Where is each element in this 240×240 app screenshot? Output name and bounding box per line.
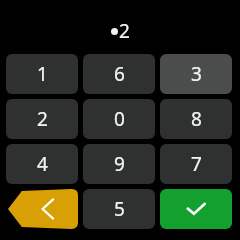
button[interactable]: 7 xyxy=(160,144,232,184)
button[interactable]: 0 xyxy=(83,99,155,139)
staticText: 2 xyxy=(37,106,48,132)
staticText: 8 xyxy=(191,106,202,132)
button[interactable]: 2 xyxy=(6,99,78,139)
staticText: 6 xyxy=(114,61,125,87)
staticText: 3 xyxy=(191,61,202,87)
button[interactable]: Confirm xyxy=(160,189,232,229)
button[interactable]: 6 xyxy=(83,54,155,94)
staticText: 4 xyxy=(37,151,48,177)
button[interactable]: 1 xyxy=(6,54,78,94)
staticText: 9 xyxy=(114,151,125,177)
button[interactable]: 8 xyxy=(160,99,232,139)
staticText: 2 xyxy=(119,18,130,44)
staticText: 0 xyxy=(114,106,125,132)
button[interactable]: 9 xyxy=(83,144,155,184)
button[interactable]: Backspace xyxy=(6,189,78,229)
staticText: 7 xyxy=(191,151,202,177)
button[interactable]: 4 xyxy=(6,144,78,184)
button[interactable]: 5 xyxy=(83,189,155,229)
staticText: 1 xyxy=(37,61,48,87)
button[interactable]: 3 xyxy=(160,54,232,94)
staticText: 5 xyxy=(114,196,125,222)
